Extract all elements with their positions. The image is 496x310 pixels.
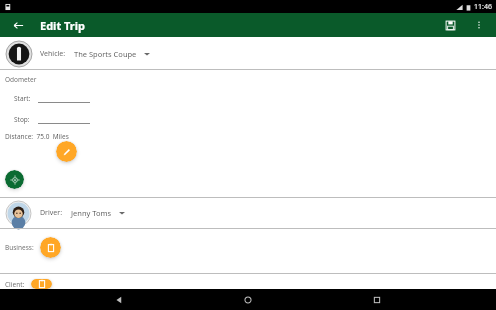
button[interactable]: Back xyxy=(109,290,129,310)
staticText: Odometer xyxy=(5,75,37,84)
staticText: Start: xyxy=(14,94,31,103)
button[interactable]: Driver: xyxy=(0,198,496,228)
button[interactable]: Back xyxy=(8,15,28,35)
button[interactable]: Stop: xyxy=(0,114,496,124)
button[interactable]: Start: xyxy=(0,93,496,103)
button[interactable]: Recent apps xyxy=(367,290,387,310)
button[interactable]: Select business xyxy=(40,237,61,258)
button[interactable]: Home xyxy=(238,290,258,310)
staticText: Vehicle: xyxy=(40,49,66,59)
button[interactable]: Select client xyxy=(31,279,52,289)
staticText: Edit Trip xyxy=(40,18,85,33)
button[interactable]: Edit odometer xyxy=(56,141,77,162)
button[interactable]: Save xyxy=(440,15,460,35)
staticText: Business: xyxy=(5,243,34,252)
staticText: The Sports Coupe xyxy=(74,49,137,59)
staticText: 11:46 xyxy=(474,2,492,12)
button[interactable]: More options xyxy=(470,16,488,34)
button[interactable]: Use GPS location xyxy=(5,170,24,189)
button[interactable]: Vehicle: xyxy=(0,38,496,69)
staticText: Client: xyxy=(5,280,25,289)
staticText: Distance: 75.0 Miles xyxy=(5,132,69,141)
staticText: Stop: xyxy=(14,115,30,124)
staticText: Driver: xyxy=(40,208,63,218)
staticText: Jenny Toms xyxy=(71,208,112,218)
